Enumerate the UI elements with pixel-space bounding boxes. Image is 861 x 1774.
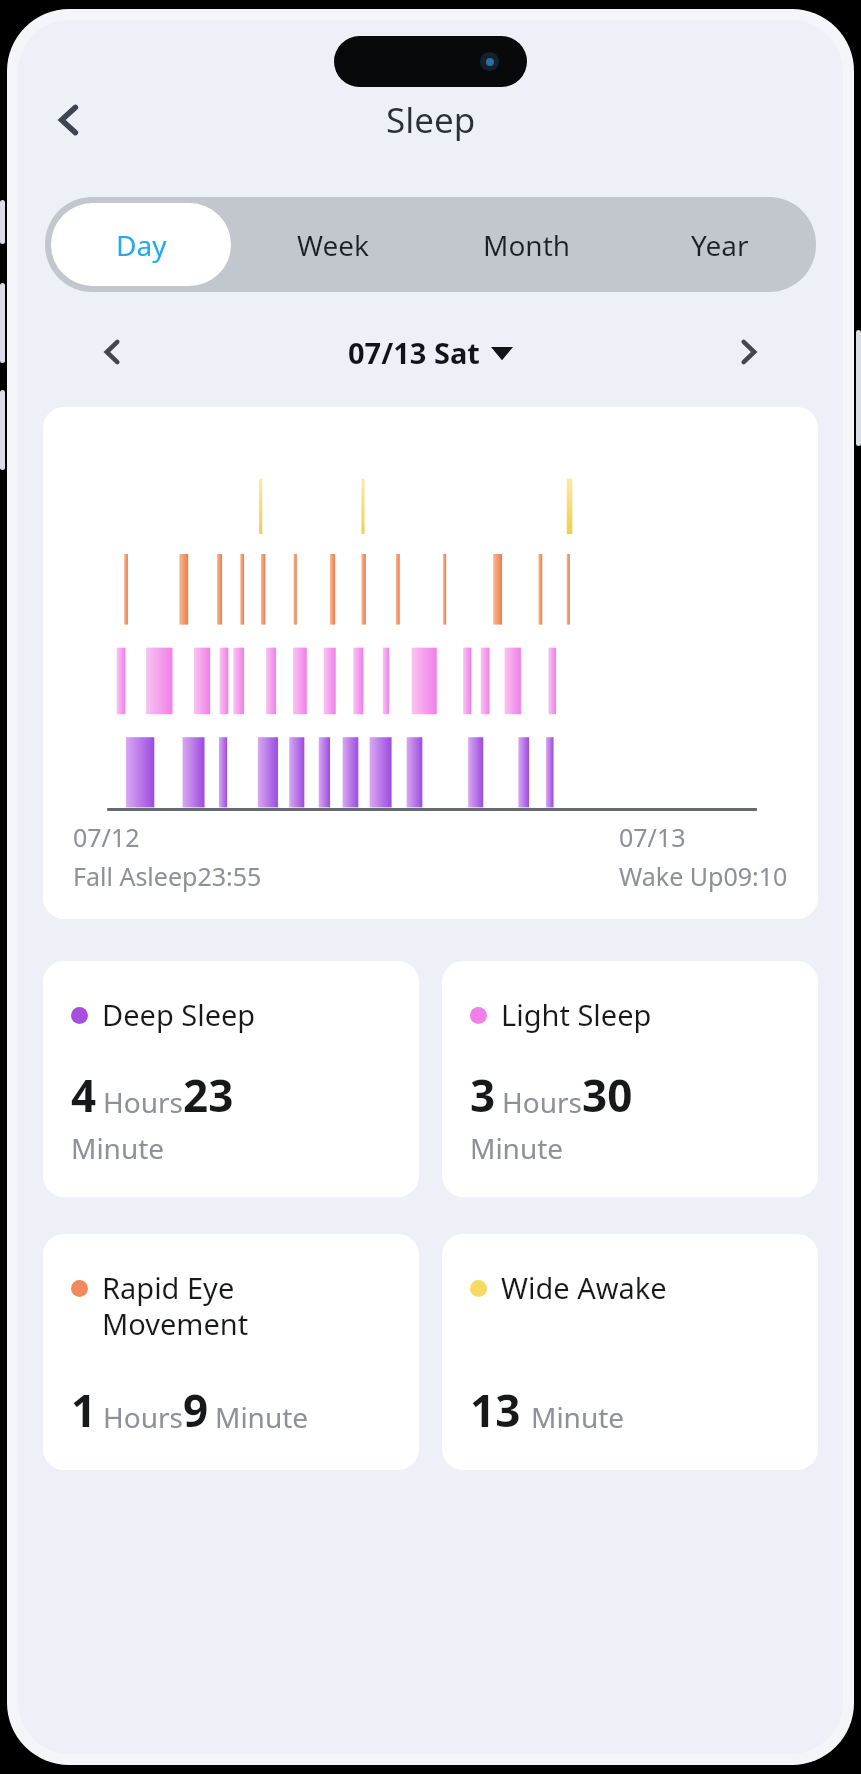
staticText: Hours xyxy=(502,1083,582,1121)
staticText: Week xyxy=(297,226,370,264)
staticText: Deep Sleep xyxy=(102,995,256,1034)
button[interactable]: Month xyxy=(436,203,617,286)
button[interactable]: 07/13 Sat xyxy=(348,333,513,372)
staticText: 3 xyxy=(470,1065,496,1125)
staticText: Minute xyxy=(531,1398,625,1436)
staticText: Month xyxy=(483,226,571,264)
staticText: Day xyxy=(116,226,167,264)
button[interactable]: Wide Awake xyxy=(442,1234,818,1470)
button[interactable]: Year xyxy=(629,203,810,286)
staticText: Sleep xyxy=(386,96,476,144)
button[interactable]: Deep Sleep xyxy=(43,961,419,1197)
staticText: 4 xyxy=(71,1065,97,1125)
staticText: 07/12 xyxy=(73,820,140,854)
staticText: Wide Awake xyxy=(501,1268,667,1307)
staticText: Hours xyxy=(103,1083,183,1121)
button[interactable]: 07/12 xyxy=(43,407,818,919)
staticText: 13 xyxy=(470,1380,521,1440)
staticText: Wake Up09:10 xyxy=(619,859,788,893)
staticText: Minute xyxy=(470,1129,564,1167)
button[interactable]: Rapid Eye Movement xyxy=(43,1234,419,1470)
staticText: 07/13 Sat xyxy=(348,333,480,372)
staticText: Year xyxy=(691,226,749,264)
staticText: Minute xyxy=(215,1398,309,1436)
staticText: Rapid Eye Movement xyxy=(102,1268,249,1344)
staticText: 9 xyxy=(183,1380,209,1440)
staticText: Fall Asleep23:55 xyxy=(73,859,262,893)
button[interactable]: Day xyxy=(51,203,231,286)
staticText: 23 xyxy=(183,1065,234,1125)
staticText: 07/13 xyxy=(619,820,686,854)
button[interactable]: Back xyxy=(42,92,98,148)
button[interactable]: Light Sleep xyxy=(442,961,818,1197)
button[interactable]: Week xyxy=(243,203,424,286)
button[interactable]: Next day xyxy=(721,325,775,379)
button[interactable]: Previous day xyxy=(86,325,140,379)
staticText: 1 xyxy=(71,1380,97,1440)
staticText: 30 xyxy=(582,1065,633,1125)
staticText: Minute xyxy=(71,1129,165,1167)
staticText: Light Sleep xyxy=(501,995,652,1034)
staticText: Hours xyxy=(103,1398,183,1436)
